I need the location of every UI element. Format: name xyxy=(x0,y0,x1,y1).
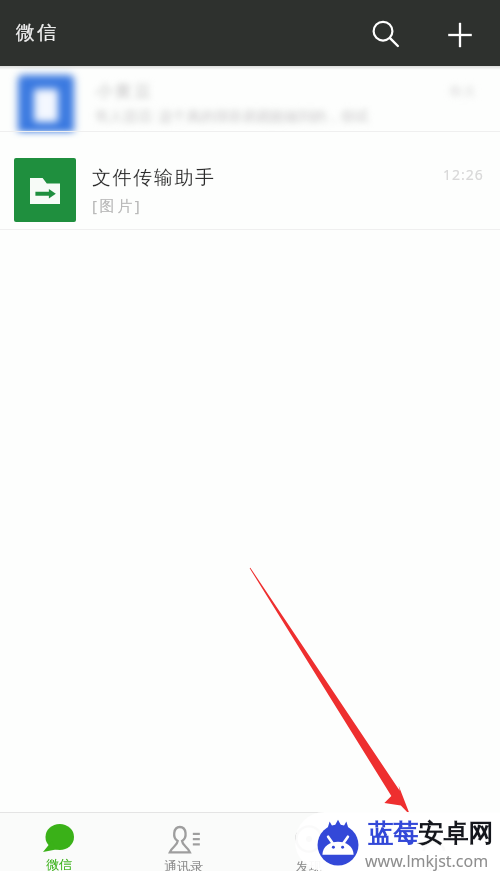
staticText: 发现 xyxy=(296,858,322,871)
button[interactable]: 我 xyxy=(375,813,500,871)
staticText: www.lmkjst.com xyxy=(365,850,489,871)
staticText: 微信 xyxy=(46,856,72,871)
staticText: 有人说话: 这个真的很容易就能做到的，你试 xyxy=(95,106,369,125)
button[interactable]: 发现 xyxy=(250,813,375,871)
staticText: 昨天 xyxy=(450,83,476,99)
button[interactable]: 微信 xyxy=(0,813,125,871)
staticText: 我 xyxy=(427,858,440,871)
staticText: 安卓网 xyxy=(418,818,493,849)
staticText: 文件传输助手 xyxy=(92,166,216,190)
button[interactable]: 文件传输助手 xyxy=(0,132,500,230)
staticText: [图片] xyxy=(92,195,143,215)
staticText: 微信 xyxy=(16,21,59,45)
button[interactable]: 通讯录 xyxy=(125,813,250,871)
button[interactable]: Add xyxy=(436,11,484,59)
staticText: 小黄豆 xyxy=(95,81,152,102)
button[interactable]: Search xyxy=(360,9,408,57)
button[interactable]: 小黄豆 xyxy=(0,66,500,132)
staticText: 12:26 xyxy=(443,165,484,184)
staticText: 蓝莓 xyxy=(368,818,418,849)
staticText: 通讯录 xyxy=(164,858,203,871)
